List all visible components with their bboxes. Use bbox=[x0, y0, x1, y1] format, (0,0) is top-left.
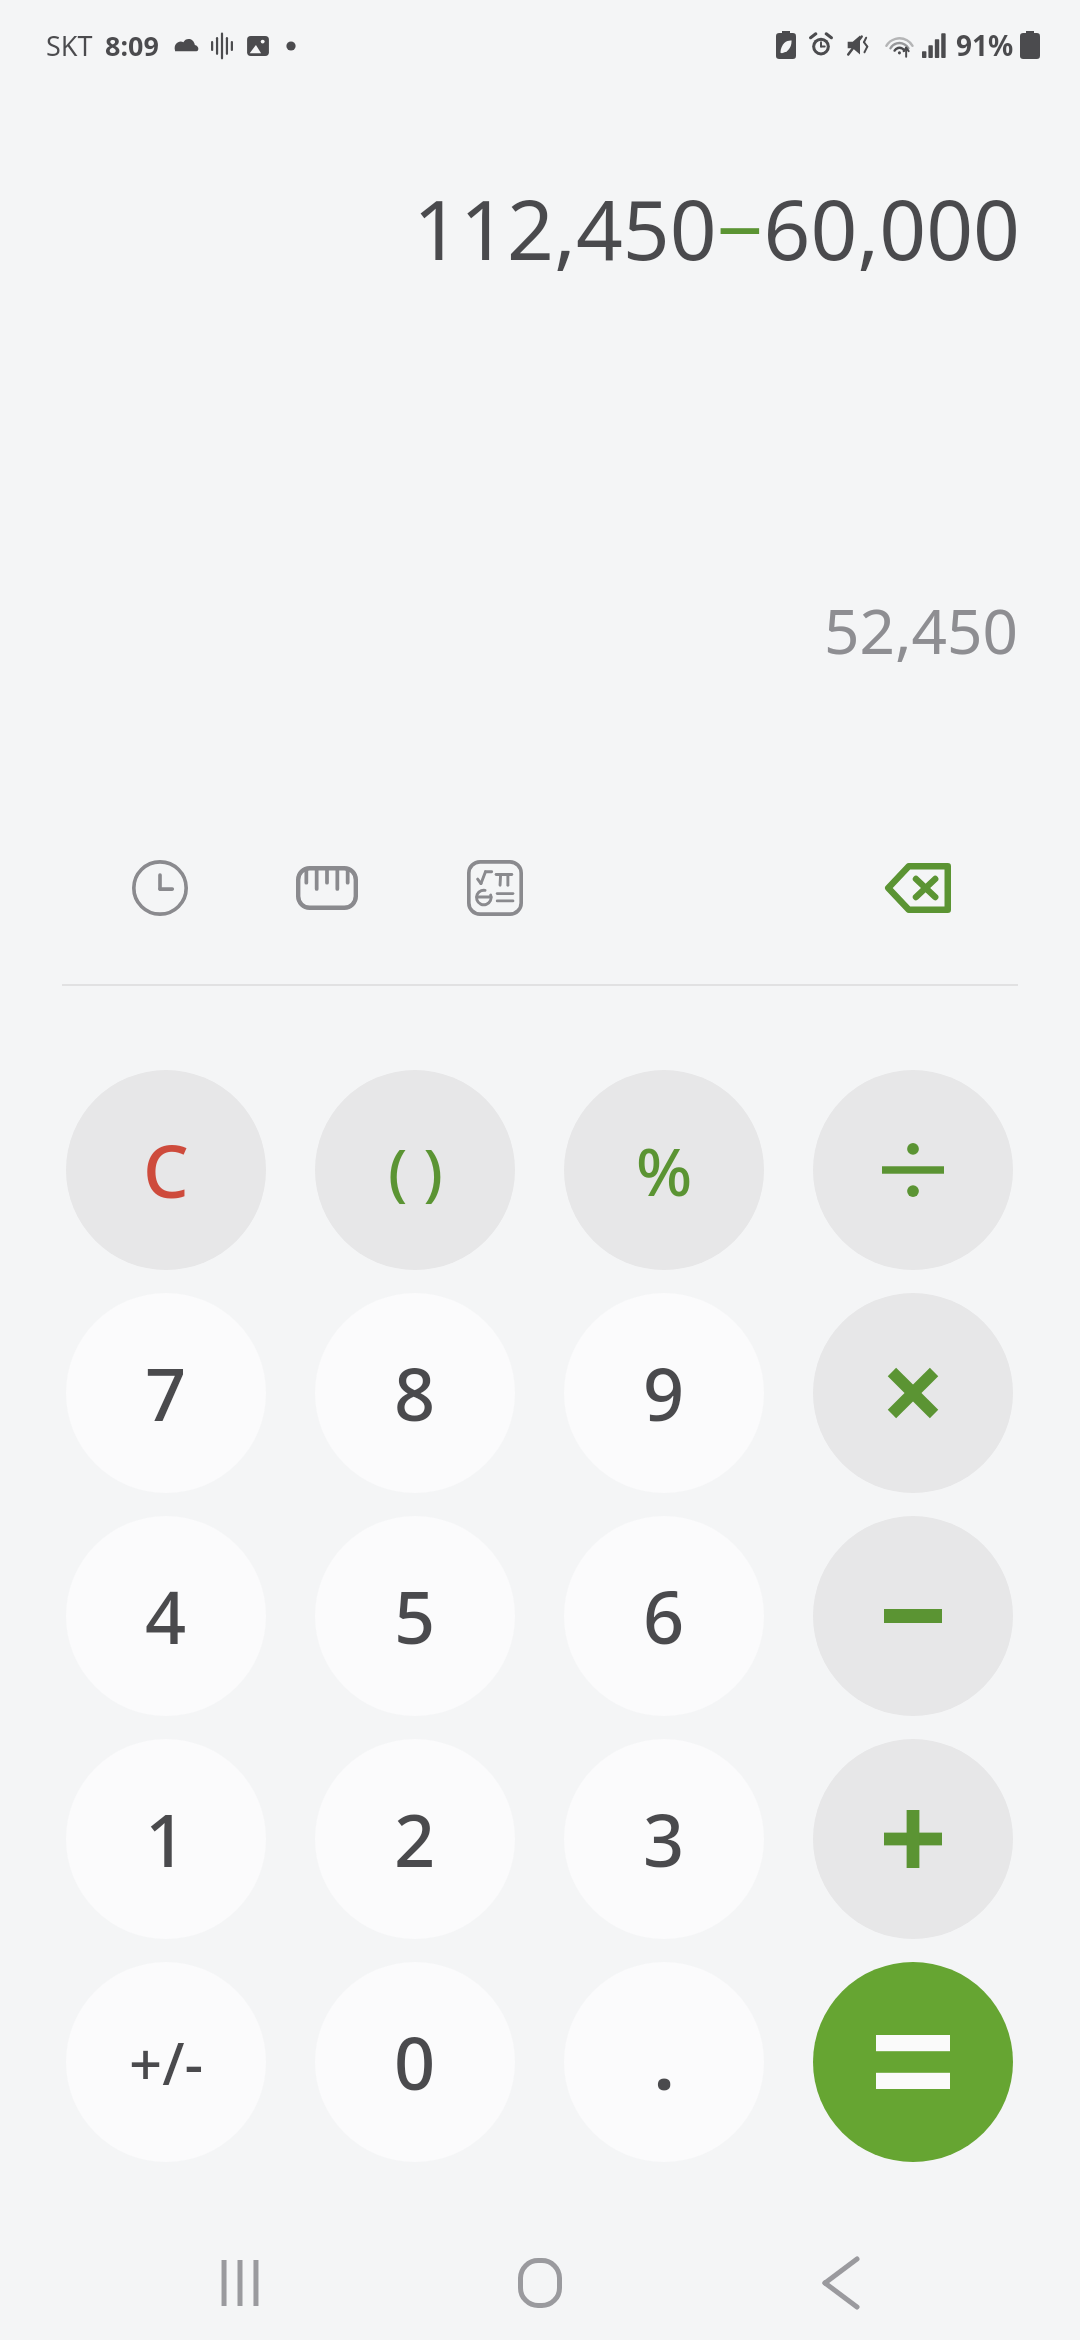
staticText: 1 bbox=[145, 1790, 187, 1888]
button[interactable]: 7 bbox=[66, 1293, 266, 1493]
staticText: 3 bbox=[643, 1790, 685, 1888]
button[interactable]: 4 bbox=[66, 1516, 266, 1716]
button[interactable]: C bbox=[66, 1070, 266, 1270]
staticText: 6 bbox=[643, 1567, 685, 1665]
staticText: 7 bbox=[145, 1344, 187, 1442]
staticText: 9 bbox=[643, 1344, 685, 1442]
button[interactable]: Recents bbox=[180, 2238, 300, 2328]
button[interactable]: Plus bbox=[813, 1739, 1013, 1939]
staticText: C bbox=[143, 1121, 189, 1219]
staticText: 0 bbox=[394, 2013, 436, 2111]
button[interactable]: Unit converter bbox=[277, 838, 377, 938]
button[interactable]: 0 bbox=[315, 1962, 515, 2162]
button[interactable]: 8 bbox=[315, 1293, 515, 1493]
button[interactable]: 3 bbox=[564, 1739, 764, 1939]
button[interactable]: +/- bbox=[66, 1962, 266, 2162]
button[interactable]: 6 bbox=[564, 1516, 764, 1716]
staticText: ( ) bbox=[388, 1128, 443, 1212]
button[interactable]: 2 bbox=[315, 1739, 515, 1939]
button[interactable]: Home bbox=[480, 2238, 600, 2328]
button[interactable]: 5 bbox=[315, 1516, 515, 1716]
staticText: 4 bbox=[145, 1567, 187, 1665]
button[interactable]: Divide bbox=[813, 1070, 1013, 1270]
button[interactable]: Equals bbox=[813, 1962, 1013, 2162]
staticText: SKT bbox=[46, 27, 93, 64]
staticText: 8:09 bbox=[105, 27, 159, 64]
button[interactable]: ( ) bbox=[315, 1070, 515, 1270]
staticText: 2 bbox=[394, 1790, 436, 1888]
staticText: % bbox=[636, 1125, 693, 1215]
button[interactable]: 1 bbox=[66, 1739, 266, 1939]
staticText: 5 bbox=[394, 1567, 436, 1665]
staticText: +/- bbox=[129, 2023, 204, 2102]
staticText: 52,450 bbox=[824, 588, 1018, 672]
button[interactable]: . bbox=[564, 1962, 764, 2162]
button[interactable]: History bbox=[110, 838, 210, 938]
staticText: 8 bbox=[394, 1344, 436, 1442]
button[interactable]: Multiply bbox=[813, 1293, 1013, 1493]
staticText: 112,450−60,000 bbox=[413, 172, 1020, 284]
button[interactable]: 9 bbox=[564, 1293, 764, 1493]
staticText: 91% bbox=[956, 26, 1014, 64]
button[interactable]: Minus bbox=[813, 1516, 1013, 1716]
staticText: . bbox=[654, 2013, 675, 2111]
button[interactable]: Backspace bbox=[868, 838, 968, 938]
button[interactable]: % bbox=[564, 1070, 764, 1270]
button[interactable]: Back bbox=[780, 2238, 900, 2328]
button[interactable]: Scientific calculator bbox=[445, 838, 545, 938]
